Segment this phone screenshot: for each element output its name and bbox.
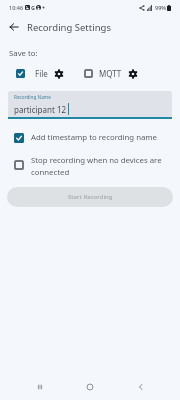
button[interactable]: Back	[6, 19, 22, 35]
button[interactable]: Unchecked	[14, 160, 24, 170]
staticText: 10:46	[9, 4, 24, 11]
staticText: participant 12	[14, 104, 67, 115]
button[interactable]: MQTT settings	[127, 68, 138, 79]
staticText: Stop recording when no devices are conne…	[31, 155, 171, 177]
staticText: MQTT	[99, 68, 122, 79]
button[interactable]: Recents	[31, 378, 49, 396]
staticText: File	[35, 68, 48, 79]
button[interactable]: File settings	[53, 68, 64, 79]
staticText: Recording Name	[14, 94, 51, 100]
staticText: Start Recording	[68, 193, 113, 201]
button[interactable]: Home	[81, 378, 99, 396]
staticText: Add timestamp to recording name	[31, 132, 158, 143]
button[interactable]: Recording Name	[8, 91, 172, 119]
staticText: Recording Settings	[27, 21, 111, 34]
staticText: 99%	[155, 4, 166, 11]
button[interactable]: Start Recording	[7, 187, 173, 207]
button[interactable]: Checked	[14, 133, 24, 143]
button[interactable]: Unchecked	[84, 69, 93, 78]
button[interactable]: Back	[132, 378, 150, 396]
staticText: Save to:	[9, 48, 38, 59]
button[interactable]: Checked	[16, 69, 25, 78]
staticText: G	[31, 4, 35, 11]
